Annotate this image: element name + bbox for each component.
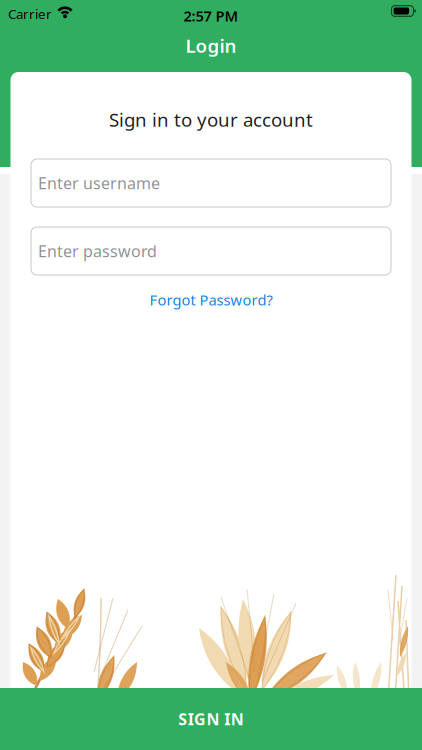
staticText: Sign in to your account <box>109 107 313 132</box>
button[interactable]: SIGN IN <box>0 688 422 750</box>
button[interactable]: Forgot Password? <box>139 283 282 316</box>
staticText: Enter username <box>38 172 160 194</box>
staticText: Login <box>185 33 236 58</box>
staticText: 2:57 PM <box>183 6 238 25</box>
staticText: Enter password <box>38 240 157 262</box>
staticText: Carrier <box>8 5 52 23</box>
staticText: Forgot Password? <box>149 290 272 309</box>
button[interactable]: Enter username <box>31 159 391 207</box>
staticText: SIGN IN <box>178 708 244 730</box>
button[interactable]: Enter password <box>31 227 391 275</box>
